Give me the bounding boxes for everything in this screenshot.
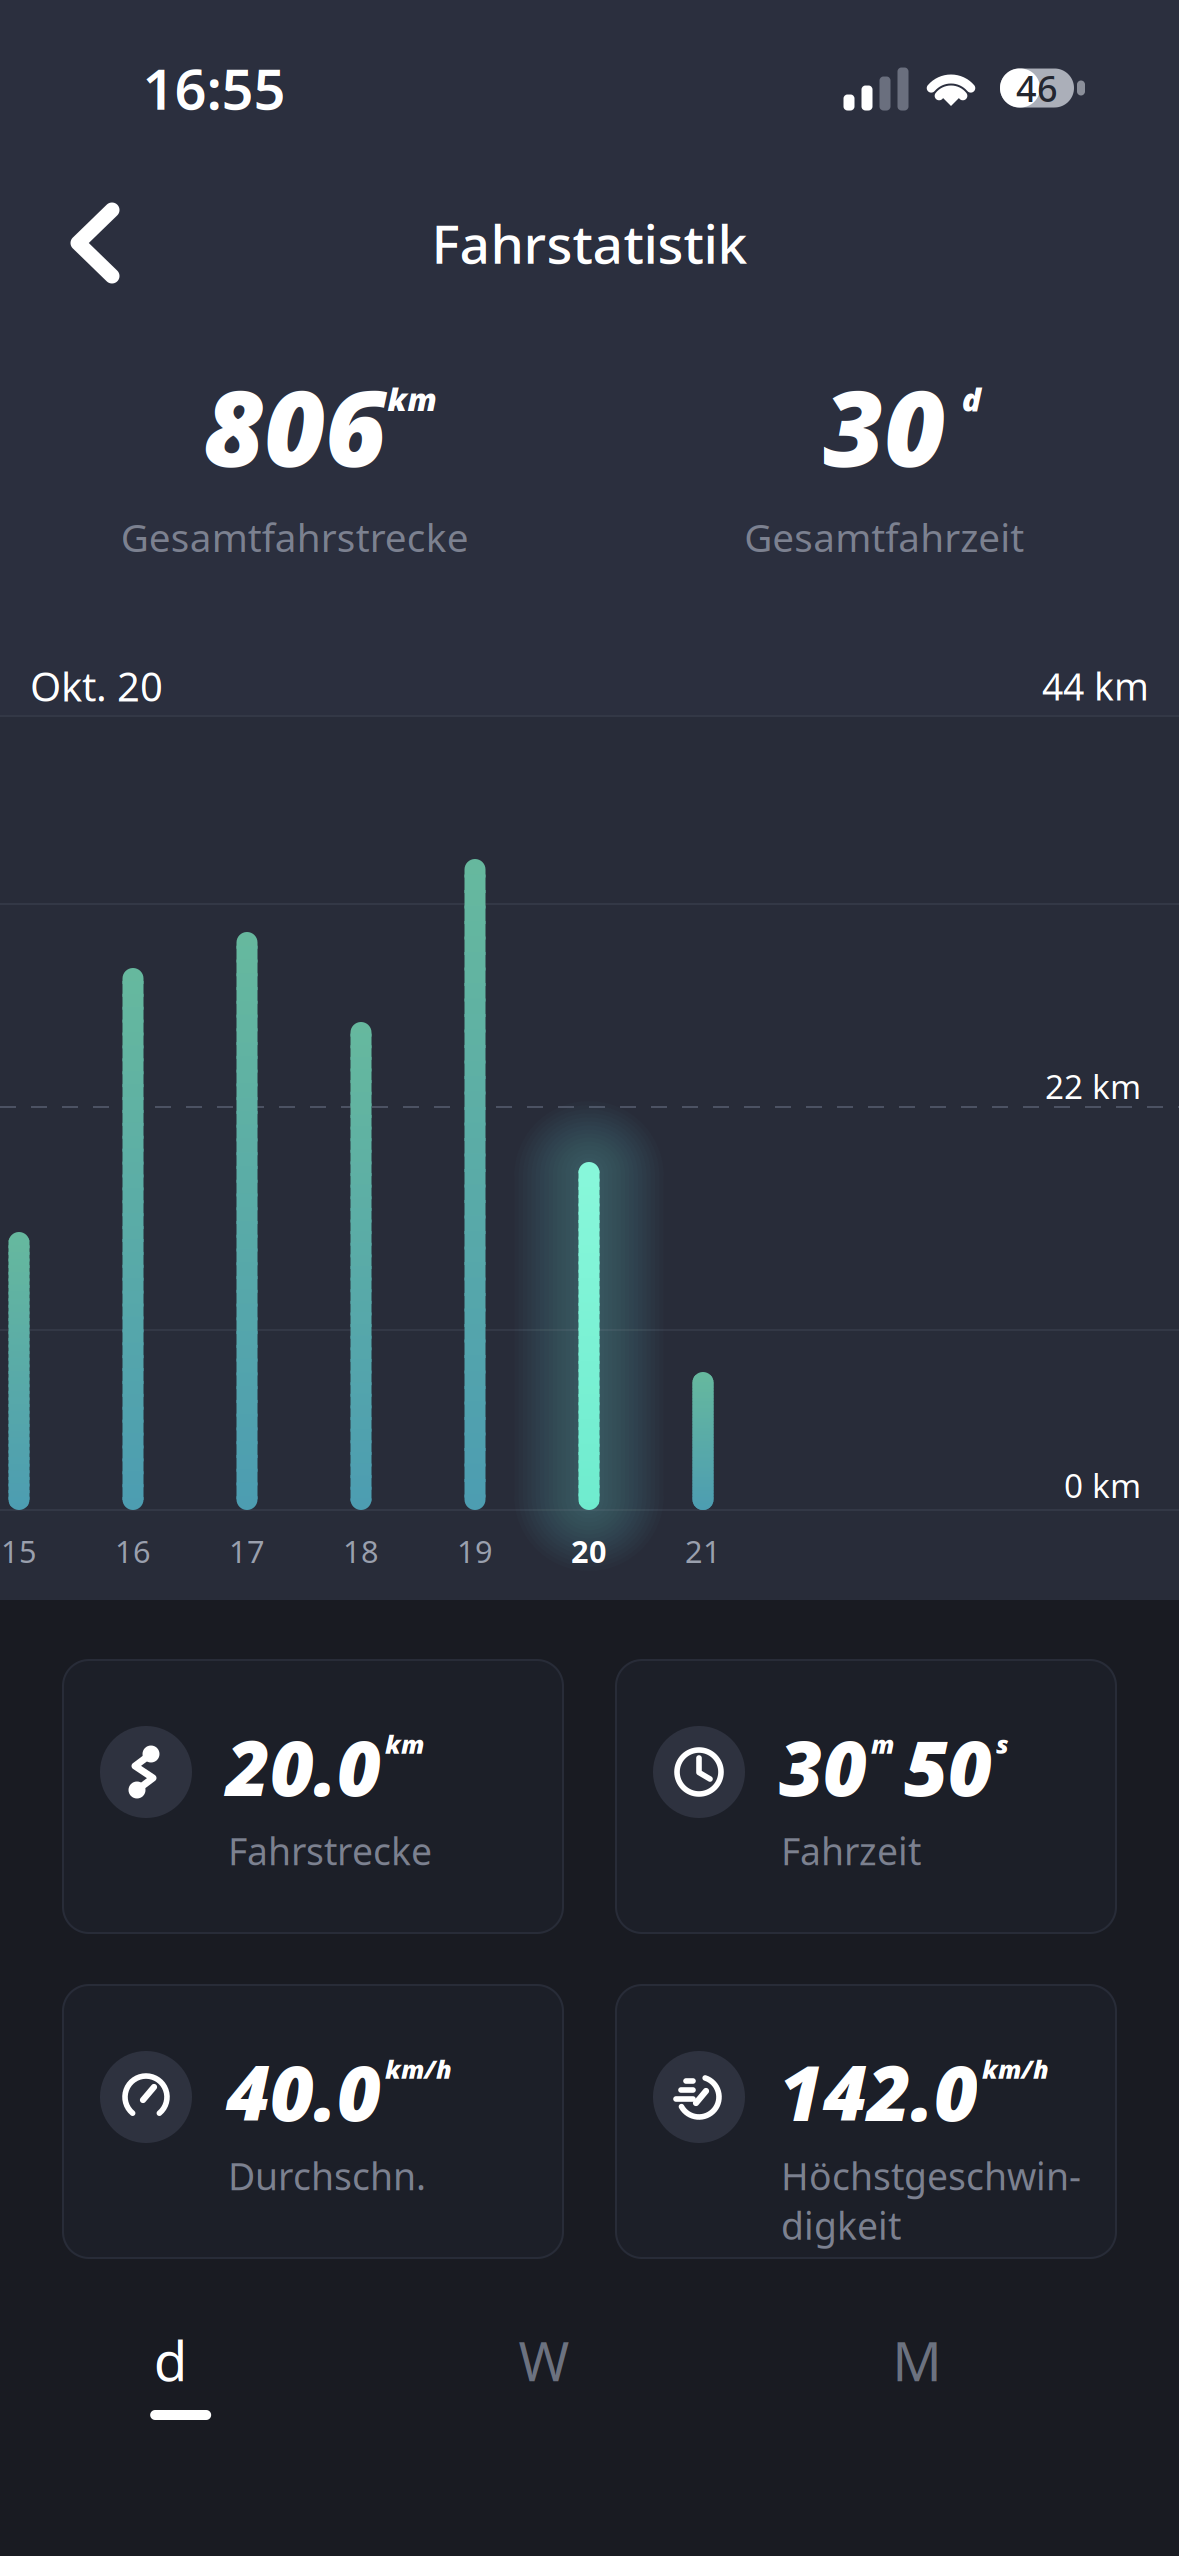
staticText: Fahrstatistik xyxy=(431,208,747,278)
staticText: 19 xyxy=(457,1531,493,1571)
staticText: 806 xyxy=(196,356,379,496)
staticText: 21 xyxy=(685,1531,721,1571)
staticText: Gesamtfahrzeit xyxy=(744,511,1024,563)
staticText: Okt. 20 xyxy=(30,659,163,712)
staticText: 46 xyxy=(1016,64,1058,112)
staticText: M xyxy=(892,2324,942,2396)
staticText: 50 xyxy=(904,1716,992,1817)
button[interactable]: Back xyxy=(32,176,158,310)
staticText: m xyxy=(871,1727,894,1761)
staticText: d xyxy=(154,2324,188,2396)
staticText: W xyxy=(518,2324,569,2396)
button[interactable]: 20.0 xyxy=(63,1660,563,1933)
staticText: 17 xyxy=(229,1531,265,1571)
button[interactable]: 30 xyxy=(616,1660,1116,1933)
button[interactable]: d xyxy=(0,2322,357,2432)
button[interactable]: M xyxy=(731,2322,1104,2432)
staticText: Fahrstrecke xyxy=(228,1826,432,1876)
staticText: 40.0 xyxy=(226,2041,381,2142)
staticText: Gesamtfahrstrecke xyxy=(121,511,469,563)
staticText: 15 xyxy=(1,1531,37,1571)
staticText: km/h xyxy=(385,2052,452,2086)
staticText: 0 km xyxy=(1064,1463,1141,1507)
staticText: km/h xyxy=(982,2052,1049,2086)
staticText: 20 xyxy=(571,1531,607,1571)
staticText: Durchschn. xyxy=(228,2151,426,2201)
button[interactable]: 142.0 xyxy=(616,1985,1116,2258)
staticText: 142.0 xyxy=(779,2041,978,2142)
staticText: 16 xyxy=(115,1531,151,1571)
staticText: km xyxy=(385,1727,424,1761)
button[interactable]: 40.0 xyxy=(63,1985,563,2258)
staticText: 806 xyxy=(203,356,386,496)
staticText: Höchstgeschwindigkeit xyxy=(781,2151,1081,2250)
staticText: 20.0 xyxy=(226,1716,381,1817)
staticText: Fahrzeit xyxy=(781,1826,921,1876)
staticText: km xyxy=(387,378,437,420)
staticText: 18 xyxy=(343,1531,379,1571)
staticText: 30 xyxy=(823,356,945,496)
staticText: 44 km xyxy=(1042,661,1149,711)
staticText: s xyxy=(996,1727,1009,1761)
staticText: 30 xyxy=(832,356,954,496)
button[interactable]: W xyxy=(357,2322,731,2432)
staticText: 22 km xyxy=(1045,1064,1141,1108)
staticText: d xyxy=(962,378,981,420)
staticText: 16:55 xyxy=(142,51,285,125)
staticText: 30 xyxy=(779,1716,867,1817)
